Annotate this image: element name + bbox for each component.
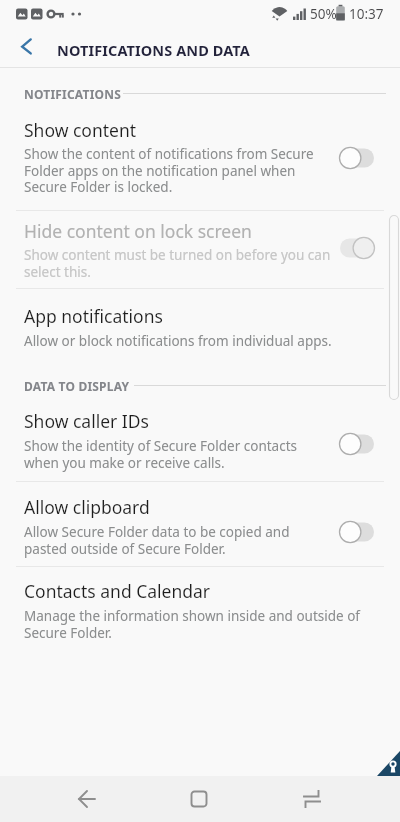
staticText: Show the content of notifications from S…	[24, 145, 314, 196]
staticText: Allow Secure Folder data to be copied an…	[24, 523, 290, 558]
staticText: Hide content on lock screen	[24, 219, 252, 243]
button[interactable]	[300, 787, 324, 811]
button[interactable]	[337, 432, 377, 456]
button[interactable]	[337, 146, 377, 170]
staticText: DATA TO DISPLAY	[24, 378, 130, 394]
button[interactable]	[0, 211, 400, 288]
button[interactable]	[0, 112, 400, 209]
button[interactable]	[75, 787, 99, 811]
button[interactable]	[0, 289, 400, 359]
staticText: App notifications	[24, 304, 163, 328]
staticText: Manage the information shown inside and …	[24, 607, 360, 642]
button[interactable]	[337, 236, 377, 260]
button[interactable]	[0, 482, 400, 566]
button[interactable]	[0, 567, 400, 652]
staticText: Show caller IDs	[24, 409, 149, 433]
staticText: Contacts and Calendar	[24, 579, 211, 603]
staticText: NOTIFICATIONS	[24, 86, 121, 102]
button[interactable]	[337, 520, 377, 544]
staticText: Allow clipboard	[24, 495, 150, 519]
staticText: 50%	[310, 5, 337, 23]
staticText: Allow or block notifications from indivi…	[24, 332, 332, 350]
staticText: NOTIFICATIONS AND DATA	[57, 40, 250, 60]
staticText: Show content	[24, 118, 137, 142]
button[interactable]	[14, 32, 42, 62]
button[interactable]	[187, 787, 211, 811]
staticText: Show the identity of Secure Folder conta…	[24, 437, 297, 472]
staticText: 10:37	[349, 5, 384, 23]
button[interactable]	[0, 402, 400, 481]
staticText: Show content must be turned on before yo…	[24, 246, 331, 281]
